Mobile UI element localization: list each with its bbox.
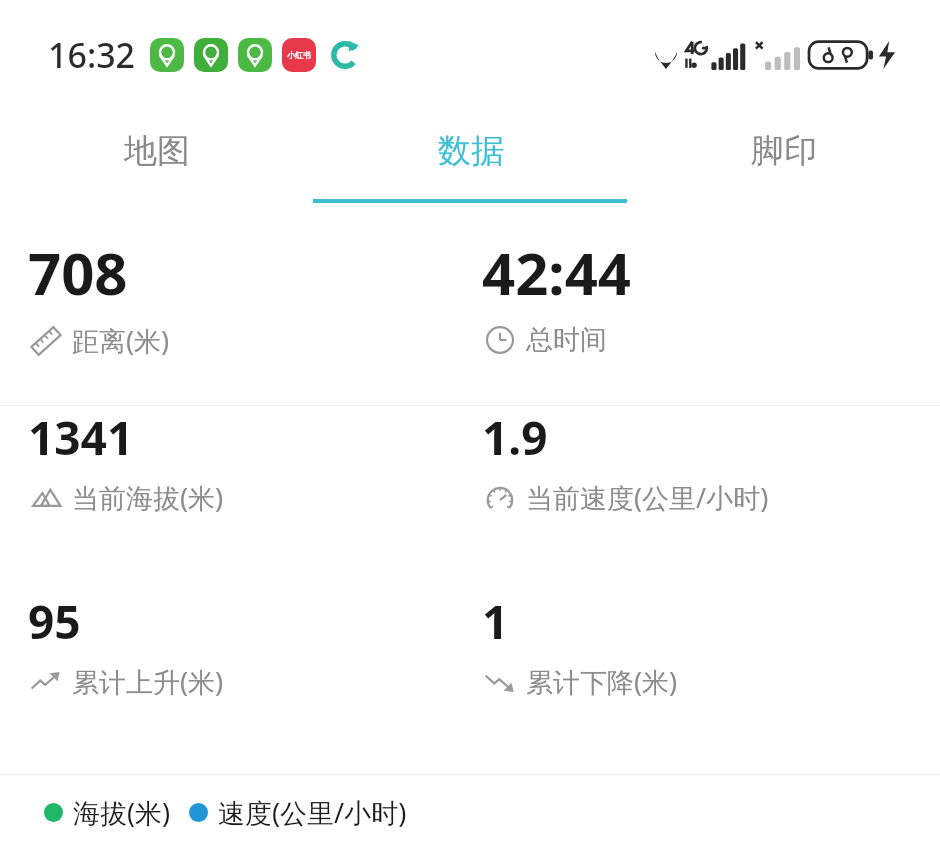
staticText: 累计下降(米) <box>526 663 678 700</box>
button[interactable]: 1341 <box>0 406 470 516</box>
staticText: 数据 <box>438 130 504 172</box>
staticText: 1.9 <box>482 406 548 469</box>
button[interactable]: 708 <box>0 233 470 359</box>
button[interactable]: 42:44 <box>470 233 940 358</box>
staticText: 95 <box>28 590 81 653</box>
button[interactable]: 脚印 <box>627 110 940 215</box>
staticText: 脚印 <box>751 130 817 172</box>
staticText: 累计上升(米) <box>72 663 224 700</box>
staticText: 小红书 <box>287 50 311 60</box>
staticText: 1341 <box>28 406 134 469</box>
staticText: 总时间 <box>526 323 607 357</box>
staticText: 速度(公里/小时) <box>218 794 407 831</box>
button[interactable]: 1.9 <box>470 406 940 516</box>
staticText: 地图 <box>124 130 190 172</box>
button[interactable]: 95 <box>0 590 470 700</box>
staticText: 距离(米) <box>72 322 170 359</box>
staticText: 当前海拔(米) <box>72 479 224 516</box>
staticText: 1 <box>482 590 509 653</box>
button[interactable]: 数据 <box>314 110 627 215</box>
button[interactable]: 1 <box>470 590 940 700</box>
staticText: 708 <box>28 233 128 312</box>
button[interactable]: 地图 <box>0 110 314 215</box>
staticText: 当前速度(公里/小时) <box>526 479 769 516</box>
staticText: 42:44 <box>482 233 632 312</box>
staticText: 海拔(米) <box>73 794 171 831</box>
staticText: 16:32 <box>48 32 136 78</box>
